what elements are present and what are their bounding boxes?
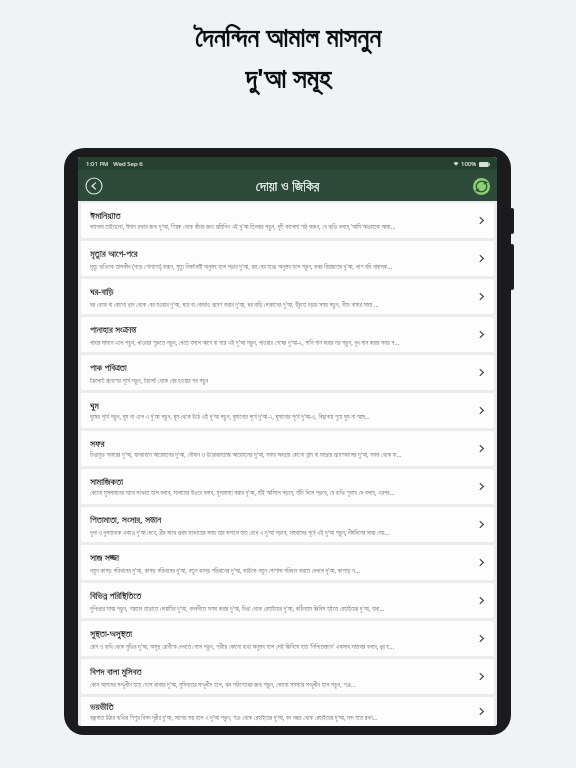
staticText: 100% bbox=[461, 160, 477, 168]
staticText: বিভিন্ন পরিস্থিতিতে bbox=[90, 589, 142, 602]
staticText: কোন আপদের সম্মুখীন হতে গেলে থাকার দু'আ, … bbox=[90, 680, 356, 688]
button[interactable]: ঘুম bbox=[81, 393, 494, 428]
staticText: দুশ্চিন্তার সময় পড়ুন, শয়তান তাড়াতে দ… bbox=[90, 604, 385, 612]
button[interactable]: সামাজিকতা bbox=[81, 469, 494, 504]
staticText: টয়লেটে প্রবেশের পূর্বে পড়ুন, টয়লেট থে… bbox=[90, 376, 209, 384]
button[interactable]: বিভিন্ন পরিস্থিতিতে bbox=[81, 583, 494, 618]
staticText: ঘুম bbox=[90, 401, 99, 410]
button[interactable]: Refresh bbox=[471, 176, 491, 196]
button[interactable]: মৃত্যুর আগে-পরে bbox=[81, 241, 494, 276]
staticText: সফর bbox=[90, 439, 105, 448]
staticText: চিন্তামুক্ত সফরের দু'আ, যানবাহনে আরোহনের… bbox=[90, 450, 402, 458]
button[interactable]: সফর bbox=[81, 431, 494, 466]
button[interactable]: বিপদ বালা মুসিবত bbox=[81, 659, 494, 694]
button[interactable]: ভয়ভীতি bbox=[81, 697, 494, 726]
staticText: ঘর থেকে বা কোনো স্থান থেকে বের হওয়ার দু… bbox=[90, 300, 379, 308]
button[interactable]: ঘর-বাড়ি bbox=[81, 279, 494, 314]
button[interactable]: সাজ সজ্জা bbox=[81, 545, 494, 580]
staticText: দুলা ও দুলহানকে একত্রে দু'আ দেবে, স্ত্রী… bbox=[90, 528, 390, 536]
staticText: সুস্থতা-অসুস্থতা bbox=[90, 627, 132, 640]
staticText: দোয়া ও জিকির bbox=[256, 176, 320, 195]
staticText: খাবার সামনে এলে পড়ুন, খাওয়ার শুরুতে পড… bbox=[90, 338, 400, 346]
staticText: পিতামাতা, সংসার, সন্তান bbox=[90, 513, 162, 526]
button[interactable]: পাক পবিত্রতা bbox=[81, 355, 494, 390]
staticText: কালেমা তাইয়্যেবা, ঈমান রক্ষার জন্য দু'আ… bbox=[90, 222, 396, 230]
staticText: দৈনন্দিন আমাল মাসনুন bbox=[195, 18, 381, 55]
staticText: সামাজিকতা bbox=[90, 477, 123, 486]
staticText: বজ্রপাত উঠার ব্যক্তির শিশুর বিপদ দূরীর দ… bbox=[90, 713, 378, 721]
button[interactable]: পিতামাতা, সংসার, সন্তান bbox=[81, 507, 494, 542]
button[interactable]: ঈমানিয়্যাত bbox=[81, 203, 494, 238]
staticText: ঘর-বাড়ি bbox=[90, 285, 114, 298]
staticText: 1:01 PM Wed Sep 6 bbox=[86, 160, 143, 168]
staticText: দু'আ সমূহ bbox=[245, 59, 331, 96]
button[interactable]: পানাহার সংক্রান্ত bbox=[81, 317, 494, 352]
staticText: সাজ সজ্জা bbox=[90, 551, 119, 564]
staticText: নতুন কাপড় পরিধানের দু'আ, কাপড় পরিধানের… bbox=[90, 566, 361, 574]
staticText: পানাহার সংক্রান্ত bbox=[90, 323, 137, 336]
staticText: বিপদ বালা মুসিবত bbox=[90, 665, 142, 678]
staticText: মৃত্যুর আগে-পরে bbox=[90, 247, 138, 260]
staticText: কোনো মুসলমানের সাথে সাক্ষাত হলে বলবে, সা… bbox=[90, 488, 395, 496]
staticText: মৃত্যু ব্যক্তিকে তালকীন (পড়ে শোনানো) কর… bbox=[90, 262, 393, 270]
staticText: ভয়ভীতি bbox=[90, 702, 114, 711]
staticText: রোগ ও ব্যধি থেকে মুক্তির দু'আ, অসুস্থ রো… bbox=[90, 642, 395, 650]
staticText: পাক পবিত্রতা bbox=[90, 361, 127, 374]
staticText: ঈমানিয়্যাত bbox=[90, 211, 121, 220]
button[interactable]: সুস্থতা-অসুস্থতা bbox=[81, 621, 494, 656]
button[interactable]: Back bbox=[84, 176, 104, 196]
staticText: ঘুমের পূর্বে পড়ুন, ঘুম না এলে এ দু'আ পড… bbox=[90, 412, 370, 420]
